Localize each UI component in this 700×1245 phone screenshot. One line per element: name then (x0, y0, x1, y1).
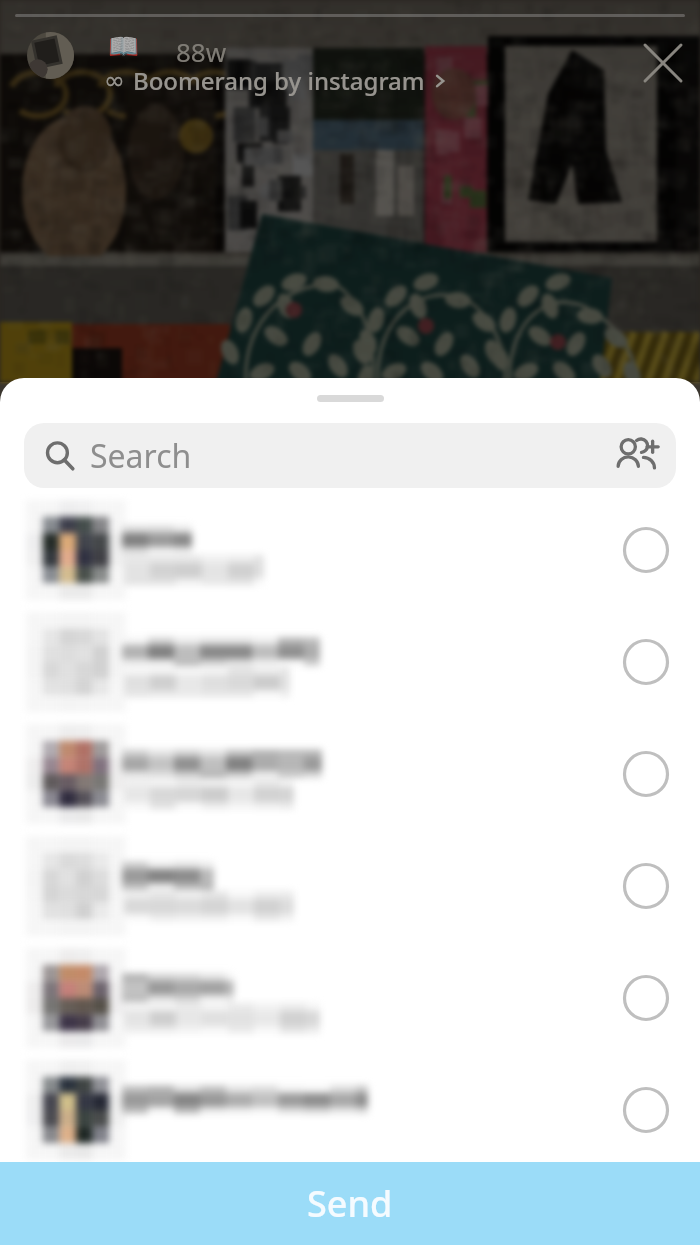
staticText: 📖 (108, 32, 140, 61)
staticText: ∞ (104, 66, 125, 95)
button[interactable]: Search (24, 423, 676, 488)
button[interactable] (0, 830, 700, 942)
staticText: Send (307, 1179, 393, 1228)
button[interactable]: Send (0, 1162, 700, 1245)
staticText: 88w (176, 34, 227, 69)
staticText: Search (90, 434, 192, 478)
button[interactable] (0, 942, 700, 1054)
button[interactable]: Add people (614, 433, 660, 479)
button[interactable] (0, 1054, 700, 1166)
button[interactable] (0, 606, 700, 718)
button[interactable] (0, 494, 700, 606)
button[interactable]: Profile photo (27, 32, 74, 79)
button[interactable]: ∞ (104, 64, 448, 97)
button[interactable] (0, 718, 700, 830)
staticText: Boomerang by instagram (133, 64, 425, 97)
button[interactable]: Close (638, 38, 688, 88)
